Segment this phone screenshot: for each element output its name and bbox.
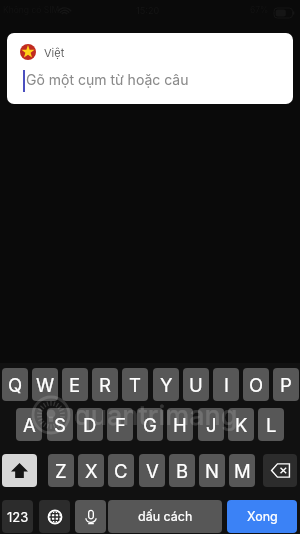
staticText: Y xyxy=(160,374,173,396)
staticText: O xyxy=(249,374,264,396)
staticText: E xyxy=(69,374,81,396)
staticText: C xyxy=(114,460,128,482)
staticText: V xyxy=(146,460,159,482)
staticText: B xyxy=(176,460,189,482)
staticText: R xyxy=(99,374,111,396)
button[interactable]: L xyxy=(258,408,284,441)
staticText: G xyxy=(143,414,157,436)
button[interactable]: Space xyxy=(108,500,222,533)
button[interactable]: Q xyxy=(2,368,28,401)
button[interactable]: E xyxy=(62,368,88,401)
staticText: F xyxy=(115,414,126,436)
staticText: T xyxy=(129,374,141,396)
staticText: X xyxy=(85,460,98,482)
button[interactable]: Việt xyxy=(7,33,293,104)
staticText: P xyxy=(280,374,292,396)
button[interactable]: S xyxy=(47,408,73,441)
staticText: N xyxy=(205,460,219,482)
staticText: quantrimang xyxy=(74,399,238,432)
staticText: S xyxy=(54,414,66,436)
button[interactable]: A xyxy=(16,408,42,441)
button[interactable]: X xyxy=(78,454,104,487)
staticText: H xyxy=(173,414,187,436)
staticText: M xyxy=(234,460,251,482)
button[interactable]: O xyxy=(243,368,269,401)
button[interactable]: U xyxy=(183,368,209,401)
staticText: Z xyxy=(55,460,67,482)
button[interactable]: G xyxy=(137,408,163,441)
button[interactable]: N xyxy=(199,454,225,487)
button[interactable]: P xyxy=(273,368,299,401)
staticText: Xong xyxy=(247,509,278,524)
staticText: I xyxy=(224,374,229,396)
button[interactable]: Shift xyxy=(2,454,37,487)
button[interactable]: T xyxy=(122,368,148,401)
staticText: D xyxy=(83,414,97,436)
staticText: L xyxy=(266,414,277,436)
staticText: Việt xyxy=(44,46,65,59)
staticText: dấu cách xyxy=(138,509,193,524)
button[interactable]: C xyxy=(108,454,134,487)
button[interactable]: W xyxy=(32,368,58,401)
button[interactable]: D xyxy=(77,408,103,441)
staticText: A xyxy=(23,414,36,436)
staticText: 123 xyxy=(7,509,29,525)
button[interactable]: Backspace xyxy=(263,454,297,487)
button[interactable]: M xyxy=(229,454,255,487)
button[interactable]: Z xyxy=(48,454,74,487)
staticText: U xyxy=(189,374,203,396)
button[interactable]: Numbers xyxy=(2,500,33,533)
staticText: K xyxy=(235,414,248,436)
staticText: W xyxy=(36,374,55,396)
button[interactable]: Change language xyxy=(39,500,70,533)
button[interactable]: Done xyxy=(227,500,297,533)
button[interactable]: R xyxy=(92,368,118,401)
button[interactable]: Dictation xyxy=(75,500,106,533)
staticText: Q xyxy=(8,374,23,396)
staticText: J xyxy=(206,414,217,436)
button[interactable]: J xyxy=(198,408,224,441)
button[interactable]: F xyxy=(107,408,133,441)
button[interactable]: K xyxy=(228,408,254,441)
button[interactable]: B xyxy=(169,454,195,487)
button[interactable]: I xyxy=(213,368,239,401)
button[interactable]: V xyxy=(139,454,165,487)
staticText: Gõ một cụm từ hoặc câu xyxy=(26,71,189,88)
button[interactable]: Y xyxy=(153,368,179,401)
button[interactable]: H xyxy=(167,408,193,441)
